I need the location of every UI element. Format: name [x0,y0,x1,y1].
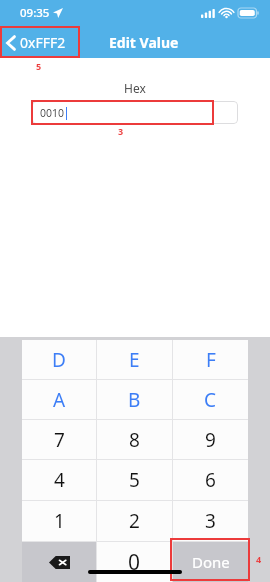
staticText: 09:35 [20,5,50,21]
other: Back [6,35,16,51]
staticText: 4 [256,553,262,565]
staticText: 4 [54,467,65,493]
staticText: 8 [129,427,140,453]
button[interactable]: 3 [173,501,248,541]
staticText: 2 [129,508,140,534]
button[interactable]: Done [173,542,248,582]
staticText: D [52,347,66,373]
staticText: B [128,387,141,413]
button[interactable]: 0010 [32,101,238,124]
staticText: 3 [118,125,124,137]
staticText: 0 [128,548,141,577]
staticText: 6 [205,467,216,493]
button[interactable]: E [97,340,172,379]
staticText: 5 [36,60,42,72]
button[interactable]: D [22,340,96,379]
button[interactable]: 8 [97,420,172,459]
button[interactable]: F [173,340,248,379]
button[interactable]: 1 [22,501,96,541]
staticText: Done [192,552,230,572]
button[interactable]: 4 [22,460,96,500]
staticText: 9 [205,427,216,453]
button[interactable]: 9 [173,420,248,459]
staticText: Edit Value [109,33,179,52]
button[interactable]: Backspace [22,542,96,582]
button[interactable]: 0 [97,542,172,582]
staticText: E [129,347,140,373]
staticText: C [204,387,217,413]
staticText: 3 [205,508,216,534]
staticText: Hex [124,80,146,96]
staticText: 0xFFF2 [20,33,66,52]
button[interactable]: C [173,380,248,419]
button[interactable]: 6 [173,460,248,500]
staticText: F [206,347,216,373]
button[interactable]: 2 [97,501,172,541]
button[interactable]: A [22,380,96,419]
staticText: A [53,387,66,413]
staticText: 1 [54,508,65,534]
button[interactable]: 5 [97,460,172,500]
staticText: 7 [54,427,65,453]
staticText: 0010 [40,106,65,120]
button[interactable]: B [97,380,172,419]
staticText: 5 [129,467,140,493]
button[interactable]: Back [0,29,76,56]
button[interactable]: 7 [22,420,96,459]
